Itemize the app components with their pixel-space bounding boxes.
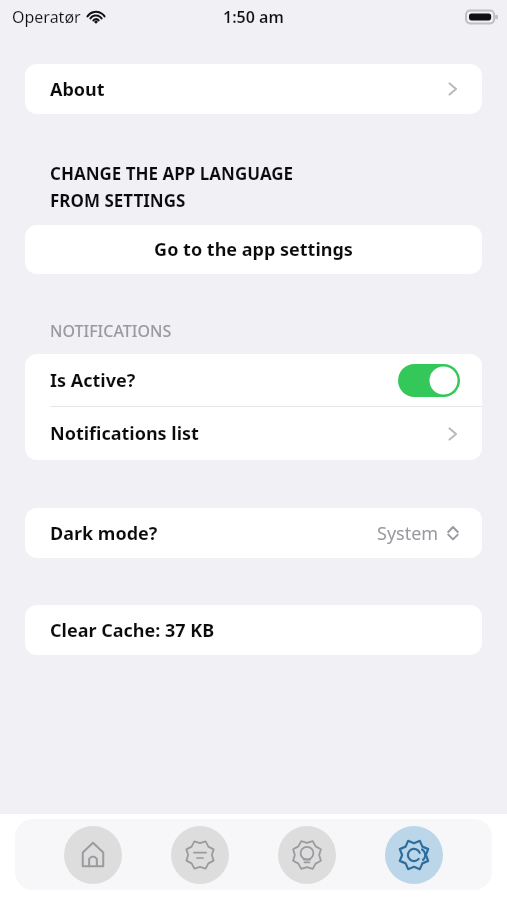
staticText: About: [50, 77, 105, 102]
staticText: NOTIFICATIONS: [50, 320, 172, 342]
staticText: CHANGE THE APP LANGUAGE FROM SETTINGS: [50, 162, 294, 212]
button[interactable]: Settings: [385, 826, 443, 884]
button[interactable]: Home: [64, 826, 122, 884]
staticText: System: [377, 521, 439, 546]
button[interactable]: Notifications list: [25, 407, 482, 460]
staticText: Is Active?: [50, 368, 136, 393]
staticText: Operatør: [12, 6, 81, 28]
button[interactable]: Dark mode?: [25, 508, 482, 558]
button[interactable]: Clear Cache: 37 KB: [25, 605, 482, 655]
button[interactable]: Quran: [171, 826, 229, 884]
button[interactable]: About: [25, 64, 482, 114]
staticText: Notifications list: [50, 421, 199, 446]
staticText: 1:50 am: [223, 6, 284, 28]
staticText: Go to the app settings: [154, 237, 353, 262]
staticText: Clear Cache: 37 KB: [50, 618, 215, 643]
button[interactable]: Ideas: [278, 826, 336, 884]
button[interactable]: Is Active?: [25, 354, 482, 406]
button[interactable]: Is Active toggle: [398, 364, 460, 397]
staticText: Dark mode?: [50, 521, 158, 546]
button[interactable]: Go to the app settings: [25, 225, 482, 274]
